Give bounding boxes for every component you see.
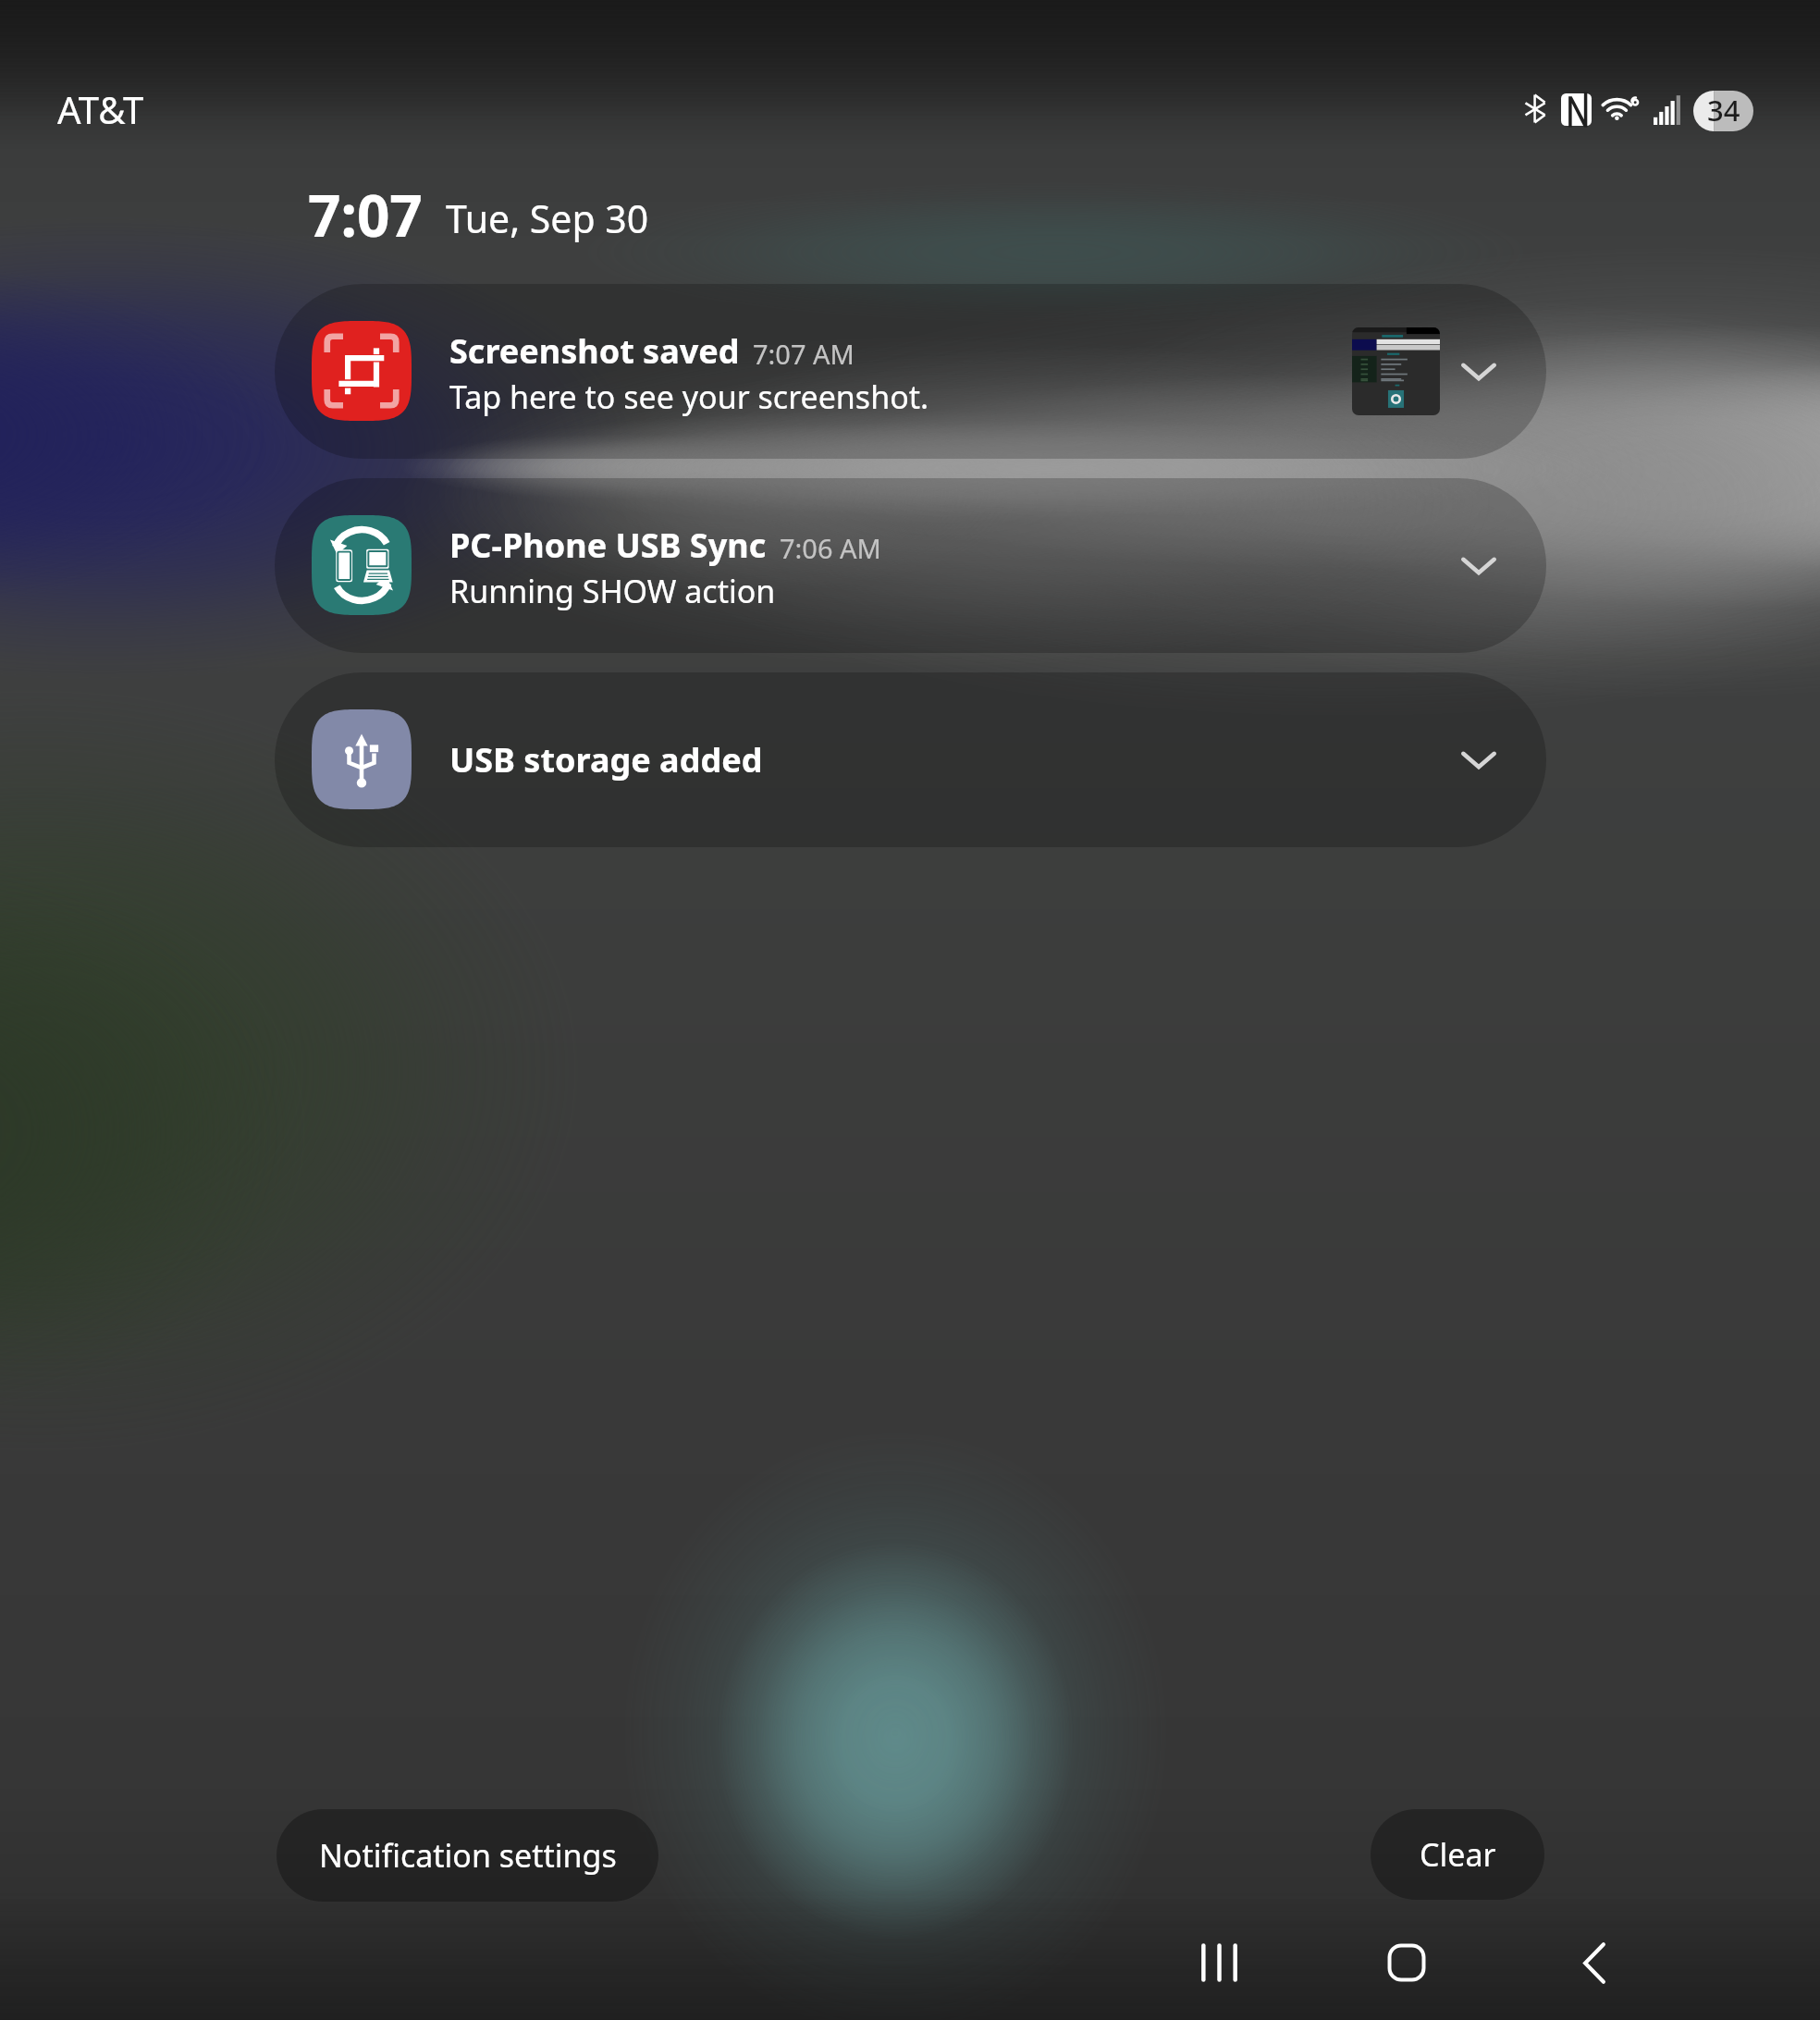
button[interactable]: Expand notification: [1433, 520, 1525, 612]
button[interactable]: Expand notification: [1433, 326, 1525, 418]
staticText: Tue, Sep 30: [446, 192, 649, 244]
staticText: Running SHOW action: [449, 570, 776, 612]
staticText: USB storage added: [449, 737, 763, 782]
staticText: Clear: [1420, 1833, 1496, 1876]
staticText: 7:07: [308, 176, 423, 253]
button[interactable]: Screenshot saved: [275, 284, 1546, 459]
button[interactable]: PC-Phone USB Sync: [275, 478, 1546, 653]
staticText: Notification settings: [319, 1834, 617, 1877]
staticText: Screenshot saved: [449, 328, 740, 374]
staticText: 34: [1707, 91, 1740, 129]
staticText: AT&T: [57, 84, 144, 134]
staticText: 7:06 AM: [780, 530, 881, 566]
button[interactable]: USB storage added: [275, 672, 1546, 847]
staticText: PC-Phone USB Sync: [449, 523, 767, 568]
button[interactable]: Expand notification: [1433, 714, 1525, 807]
button[interactable]: Back: [1548, 1916, 1641, 2009]
button[interactable]: Home: [1360, 1916, 1453, 2009]
staticText: 7:07 AM: [753, 336, 855, 372]
button[interactable]: Notification settings: [277, 1809, 658, 1902]
button[interactable]: Recent apps: [1173, 1916, 1265, 2009]
button[interactable]: Clear: [1371, 1809, 1544, 1900]
staticText: Tap here to see your screenshot.: [449, 376, 929, 418]
